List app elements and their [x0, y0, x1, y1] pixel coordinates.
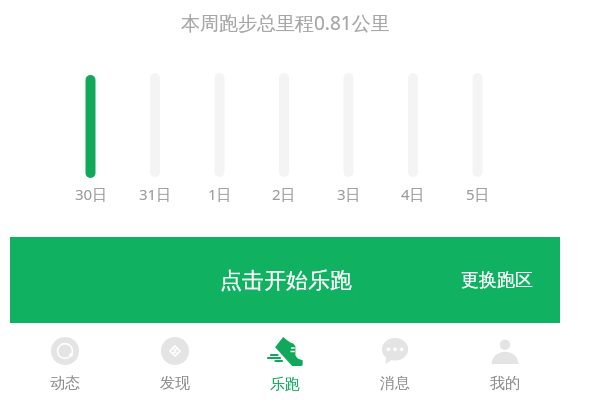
button[interactable]: 乐跑: [230, 327, 340, 399]
button[interactable]: 点击开始乐跑: [10, 237, 560, 323]
button[interactable]: 更换跑区: [447, 259, 547, 302]
staticText: 2日: [272, 184, 296, 204]
staticText: 点击开始乐跑: [220, 267, 352, 295]
staticText: 动态: [50, 374, 80, 393]
staticText: 消息: [380, 374, 410, 393]
staticText: 发现: [160, 374, 190, 393]
staticText: 30日: [75, 184, 108, 204]
button[interactable]: 动态: [10, 327, 120, 399]
staticText: 5日: [466, 184, 490, 204]
staticText: 3日: [337, 184, 361, 204]
staticText: 本周跑步总里程0.81公里: [181, 10, 390, 36]
staticText: 4日: [401, 184, 425, 204]
staticText: 我的: [490, 374, 520, 393]
button[interactable]: 我的: [450, 327, 560, 399]
button[interactable]: 消息: [340, 327, 450, 399]
staticText: 更换跑区: [461, 269, 533, 292]
staticText: 1日: [208, 184, 232, 204]
button[interactable]: 发现: [120, 327, 230, 399]
staticText: 乐跑: [270, 375, 300, 394]
staticText: 31日: [139, 184, 172, 204]
